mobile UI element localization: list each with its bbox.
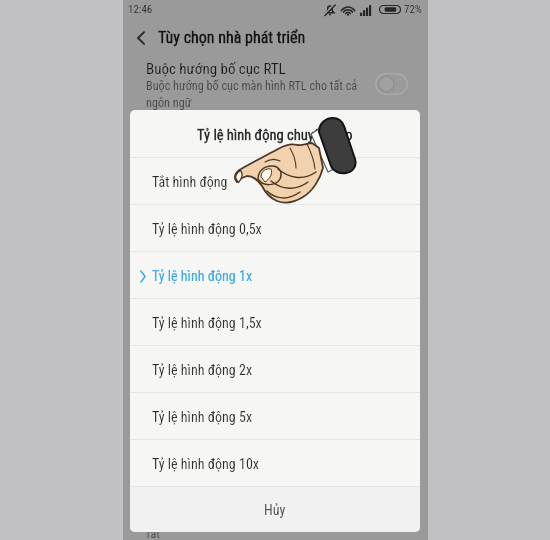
staticText: 12:46	[128, 3, 153, 16]
staticText: Tỷ lệ hình động 1x	[152, 268, 253, 284]
button[interactable]: Tỷ lệ hình động 1,5x	[130, 299, 420, 345]
staticText: Tỷ lệ hình động chuyển tiếp	[197, 127, 353, 144]
button[interactable]: Tỷ lệ hình động 2x	[130, 346, 420, 392]
button[interactable]: Tỷ lệ hình động 10x	[130, 440, 420, 486]
staticText: Tỷ lệ hình động 0,5x	[152, 221, 262, 237]
button[interactable]: Tỷ lệ hình động 1x	[130, 252, 420, 298]
button[interactable]: Tỷ lệ hình động 0,5x	[130, 205, 420, 251]
staticText: Tắt hình động	[152, 174, 228, 190]
staticText: Tỷ lệ hình động 5x	[152, 409, 253, 425]
button[interactable]: Tỷ lệ hình động 5x	[130, 393, 420, 439]
button[interactable]: Force RTL layout toggle	[375, 73, 408, 95]
staticText: Hủy	[264, 502, 286, 518]
button[interactable]: Tắt hình động	[130, 158, 420, 204]
staticText: 72%	[404, 3, 422, 16]
staticText: Tỷ lệ hình động 1,5x	[152, 315, 262, 331]
staticText: Buộc hướng bố cục RTL	[146, 60, 286, 78]
staticText: Tùy chọn nhà phát triển	[158, 28, 306, 47]
staticText: Tắt	[145, 527, 160, 540]
staticText: Tỷ lệ hình động 10x	[152, 456, 259, 472]
button[interactable]: Back	[127, 22, 155, 54]
staticText: Buộc hướng bố cục màn hình RTL cho tất c…	[146, 79, 358, 110]
button[interactable]: Hủy	[130, 487, 420, 532]
staticText: Tỷ lệ hình động 2x	[152, 362, 253, 378]
